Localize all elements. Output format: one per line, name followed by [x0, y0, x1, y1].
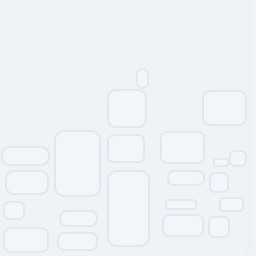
button[interactable]: Placeholder block — [58, 233, 97, 250]
button[interactable]: Placeholder block — [209, 217, 229, 237]
button[interactable]: Placeholder block — [55, 131, 100, 196]
button[interactable]: Placeholder block — [203, 91, 246, 125]
button[interactable]: Placeholder block — [60, 211, 97, 226]
button[interactable]: Placeholder block — [220, 198, 243, 211]
button[interactable]: Placeholder block — [168, 171, 204, 185]
button[interactable]: Placeholder block — [210, 173, 228, 192]
button[interactable]: Placeholder block — [163, 215, 203, 236]
button[interactable]: Placeholder block — [108, 135, 144, 162]
button[interactable]: Placeholder block — [6, 171, 48, 194]
button[interactable]: Placeholder block — [2, 147, 49, 165]
button[interactable]: Placeholder block — [4, 228, 48, 252]
button[interactable]: Placeholder block — [161, 132, 204, 163]
button[interactable]: Placeholder block — [137, 69, 148, 88]
button[interactable]: Placeholder block — [214, 159, 228, 166]
button[interactable]: Placeholder block — [108, 171, 149, 246]
button[interactable]: Placeholder block — [108, 90, 146, 127]
button[interactable]: Placeholder block — [230, 151, 246, 166]
button[interactable]: Placeholder block — [166, 200, 196, 209]
button[interactable]: Placeholder block — [4, 202, 24, 219]
